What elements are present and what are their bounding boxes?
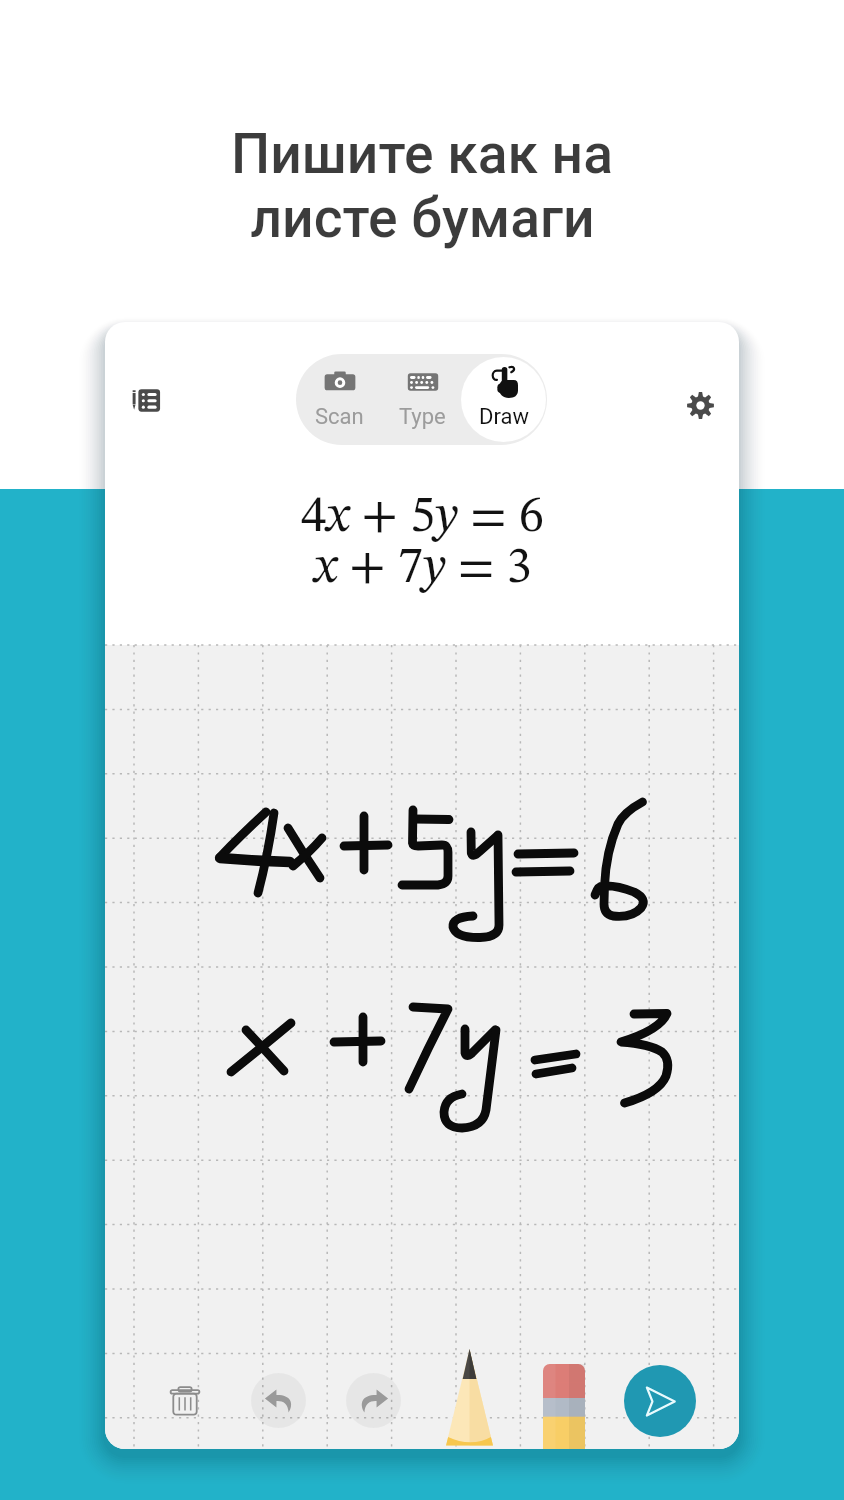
staticText: Пишите как на	[231, 122, 613, 186]
button[interactable]: Pencil	[446, 1349, 493, 1449]
staticText: Draw	[479, 404, 529, 430]
button[interactable]: Scan	[296, 354, 382, 445]
button[interactable]: History	[121, 376, 169, 424]
button[interactable]: Type	[379, 354, 465, 445]
staticText: x + 7y = 3	[314, 543, 532, 594]
staticText: Type	[399, 404, 446, 430]
button[interactable]: Undo	[251, 1373, 306, 1428]
button[interactable]: Redo	[346, 1373, 401, 1428]
staticText: Scan	[315, 404, 364, 430]
button[interactable]: Draw	[461, 357, 546, 442]
staticText: 4x + 5y = 6	[301, 492, 544, 543]
staticText: листе бумаги	[250, 186, 595, 250]
button[interactable]: Delete	[155, 1371, 215, 1431]
button[interactable]: Send	[624, 1365, 696, 1437]
button[interactable]: Eraser	[543, 1364, 585, 1449]
button[interactable]: Settings	[676, 381, 724, 429]
